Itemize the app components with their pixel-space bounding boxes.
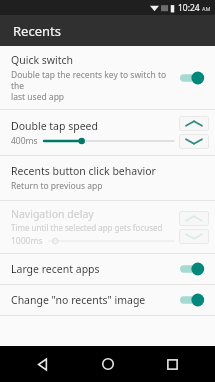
button[interactable]: Toggle	[180, 70, 206, 86]
staticText: Double tap the recents key to switch to …	[11, 69, 174, 102]
staticText: 1000ms	[11, 235, 43, 247]
button[interactable]: Increase	[179, 211, 209, 226]
button[interactable]: Toggle	[180, 292, 206, 308]
button[interactable]: Back	[21, 346, 65, 382]
staticText: Large recent apps	[11, 262, 100, 276]
staticText: Time until the selected app gets focused	[11, 222, 163, 233]
button[interactable]: Large recent apps	[0, 254, 215, 284]
staticText: 10:24	[178, 2, 200, 14]
button[interactable]: Navigation delay	[0, 201, 215, 253]
staticText: Double tap speed	[11, 119, 98, 133]
button[interactable]: Slider	[49, 235, 174, 247]
staticText: 400ms	[11, 135, 38, 147]
staticText: Change "no recents" image	[11, 293, 146, 307]
button[interactable]: Recents button click behavior	[0, 156, 215, 200]
button[interactable]: Decrease	[179, 134, 209, 149]
staticText: Navigation delay	[11, 207, 94, 221]
button[interactable]: Decrease	[179, 229, 209, 244]
button[interactable]: Slider	[44, 135, 174, 147]
staticText: AM	[202, 5, 211, 12]
staticText: Return to previous app	[11, 180, 103, 192]
button[interactable]: Increase	[179, 116, 209, 131]
staticText: Recents	[13, 22, 61, 40]
button[interactable]: Recents	[150, 346, 194, 382]
button[interactable]: Toggle	[180, 261, 206, 277]
staticText: Quick switch	[11, 53, 74, 67]
button[interactable]: Quick switch	[0, 46, 215, 109]
button[interactable]: Double tap speed	[0, 110, 215, 155]
staticText: Recents button click behavior	[11, 164, 156, 178]
button[interactable]: Home	[86, 346, 130, 382]
button[interactable]: Change "no recents" image	[0, 285, 215, 315]
